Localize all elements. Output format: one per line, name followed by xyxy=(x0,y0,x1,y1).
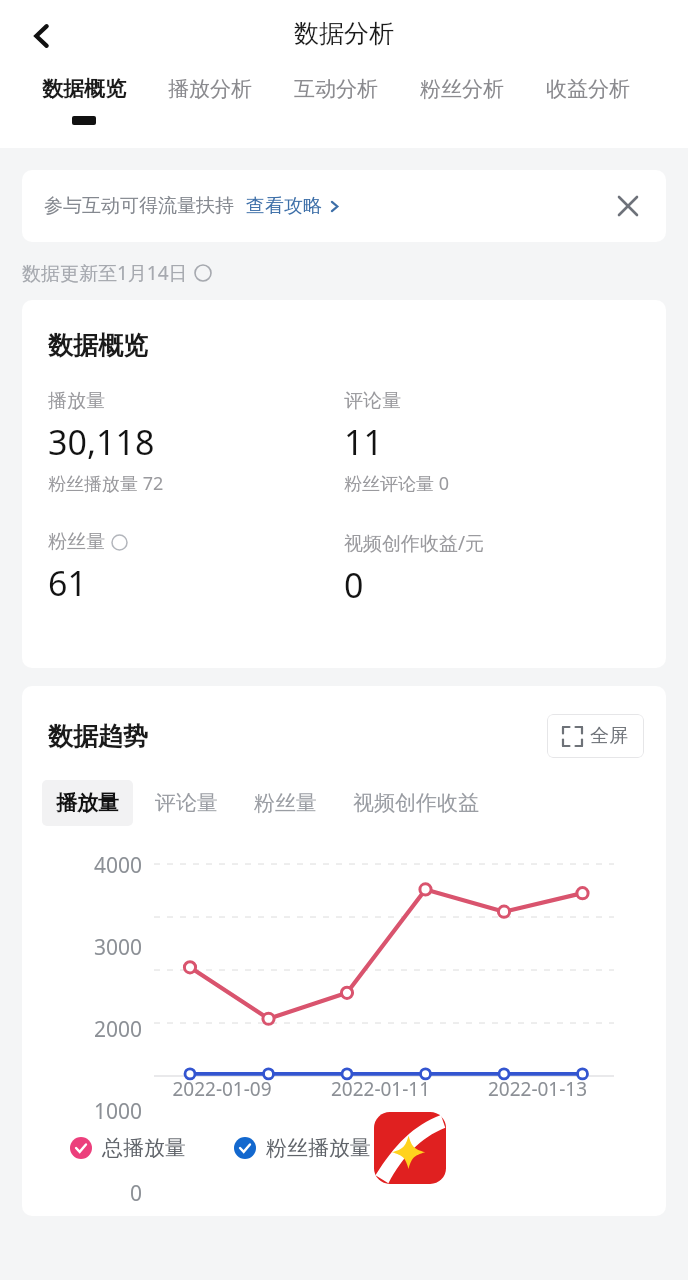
staticText: 播放量 xyxy=(48,389,105,413)
staticText: 评论量 xyxy=(155,790,218,816)
staticText: 视频创作收益/元 xyxy=(344,530,485,556)
staticText: 数据分析 xyxy=(294,18,394,49)
staticText: 30,118 xyxy=(48,419,155,465)
staticText: 61 xyxy=(48,560,87,606)
staticText: 粉丝分析 xyxy=(420,76,504,102)
staticText: 粉丝量 xyxy=(48,530,105,554)
staticText: 0 xyxy=(344,562,364,608)
staticText: 互动分析 xyxy=(294,76,378,102)
button[interactable]: 播放量 xyxy=(42,780,133,826)
staticText: 粉丝评论量 0 xyxy=(344,471,449,496)
staticText: 全屏 xyxy=(590,724,628,748)
button[interactable]: 评论量 xyxy=(141,780,232,826)
staticText: 2000 xyxy=(22,1015,142,1044)
staticText: 播放量 xyxy=(56,790,119,816)
button[interactable]: 粉丝播放量 xyxy=(234,1135,371,1161)
staticText: 数据概览 xyxy=(42,76,126,102)
button[interactable]: 全屏 xyxy=(547,714,644,758)
staticText: 播放分析 xyxy=(168,76,252,102)
staticText: 数据概览 xyxy=(48,330,148,361)
button[interactable]: 视频创作收益/元 xyxy=(344,530,640,608)
staticText: 视频创作收益 xyxy=(353,790,479,816)
button[interactable]: 数据更新至1月14日 xyxy=(22,260,212,286)
button[interactable]: 评论量 xyxy=(344,389,640,496)
staticText: 评论量 xyxy=(344,389,401,413)
staticText: 数据趋势 xyxy=(48,721,148,752)
staticText: 总播放量 xyxy=(102,1135,186,1161)
staticText: 2022-01-13 xyxy=(459,1076,616,1102)
staticText: 2022-01-09 xyxy=(142,1076,302,1102)
button[interactable]: 收益分析 xyxy=(546,76,630,102)
button[interactable]: 参与互动可得流量扶持 xyxy=(22,170,666,242)
staticText: 查看攻略 xyxy=(246,194,322,218)
staticText: 数据更新至1月14日 xyxy=(22,260,188,286)
button[interactable]: 粉丝量 xyxy=(240,780,331,826)
staticText: 0 xyxy=(22,1179,142,1208)
button[interactable]: 粉丝量 xyxy=(48,530,344,606)
staticText: 11 xyxy=(344,419,383,465)
button[interactable]: 数据概览 xyxy=(42,76,126,125)
button[interactable]: 播放量 xyxy=(48,389,344,496)
staticText: 1000 xyxy=(22,1097,142,1126)
button[interactable]: 播放分析 xyxy=(168,76,252,102)
button[interactable]: Back xyxy=(14,8,70,64)
button[interactable]: App icon xyxy=(372,1110,448,1186)
button[interactable]: 视频创作收益 xyxy=(339,780,493,826)
staticText: 2022-01-11 xyxy=(302,1076,459,1102)
button[interactable]: 总播放量 xyxy=(70,1135,186,1161)
staticText: 收益分析 xyxy=(546,76,630,102)
staticText: 粉丝播放量 72 xyxy=(48,471,164,496)
button[interactable]: Close xyxy=(606,184,650,228)
staticText: 参与互动可得流量扶持 xyxy=(44,194,234,218)
staticText: 3000 xyxy=(22,933,142,962)
staticText: 4000 xyxy=(22,851,142,880)
staticText: 粉丝播放量 xyxy=(266,1135,371,1161)
button[interactable]: 粉丝分析 xyxy=(420,76,504,102)
button[interactable]: 互动分析 xyxy=(294,76,378,102)
staticText: 粉丝量 xyxy=(254,790,317,816)
